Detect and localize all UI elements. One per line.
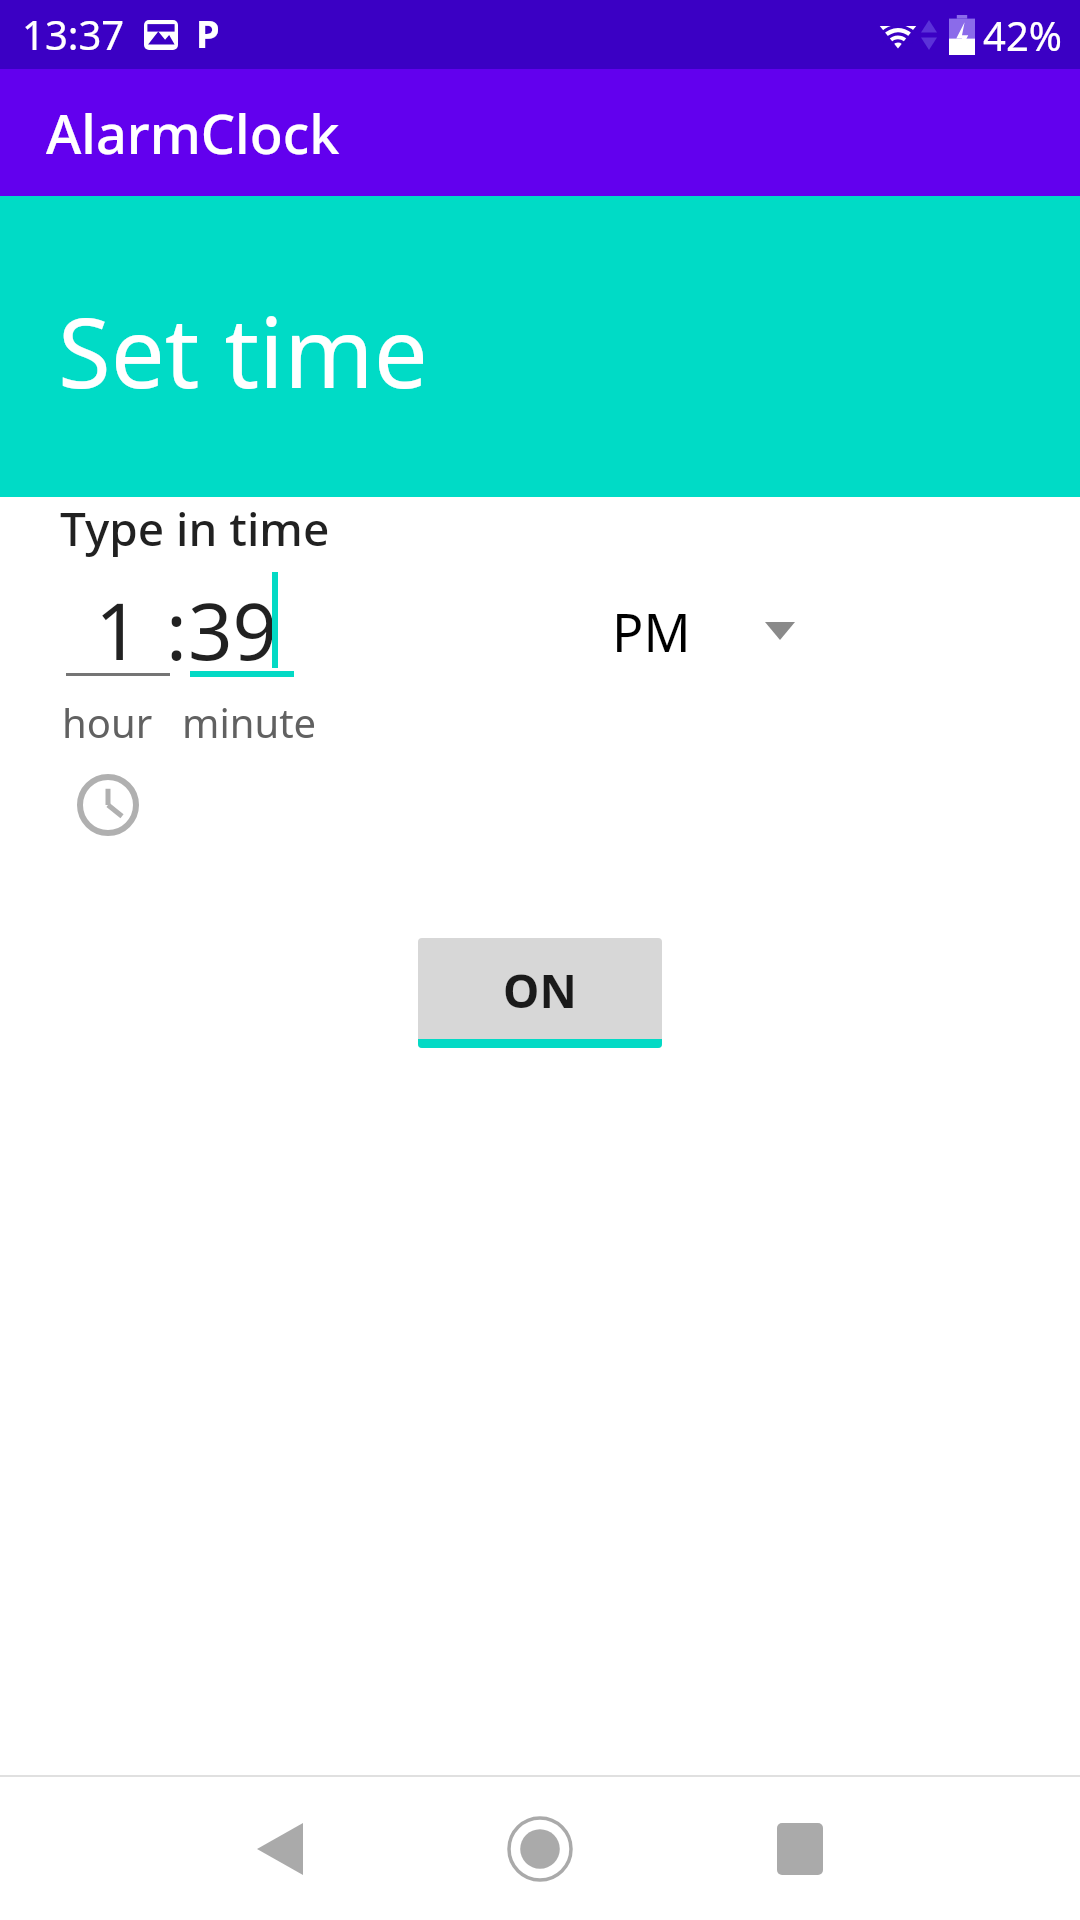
staticText: 42%	[983, 8, 1062, 62]
button[interactable]: ON	[418, 938, 662, 1048]
button[interactable]: Recent apps	[745, 1794, 855, 1904]
staticText: AlarmClock	[46, 96, 340, 170]
staticText: 39	[188, 577, 278, 683]
staticText: minute	[182, 695, 317, 749]
button[interactable]: PM	[612, 585, 832, 677]
button[interactable]: 39	[188, 573, 292, 683]
staticText: P	[196, 7, 220, 59]
staticText: PM	[612, 596, 691, 667]
staticText: hour	[62, 695, 153, 749]
staticText: :	[166, 577, 187, 683]
staticText: 1	[95, 577, 140, 683]
staticText: Type in time	[60, 497, 330, 560]
staticText: 13:37	[22, 7, 125, 61]
button[interactable]: Back	[225, 1794, 335, 1904]
staticText: Set time	[58, 285, 428, 416]
button[interactable]: Open clock time picker	[70, 767, 146, 843]
staticText: ON	[503, 959, 577, 1022]
button[interactable]: Home	[485, 1794, 595, 1904]
button[interactable]: 1	[62, 573, 172, 683]
